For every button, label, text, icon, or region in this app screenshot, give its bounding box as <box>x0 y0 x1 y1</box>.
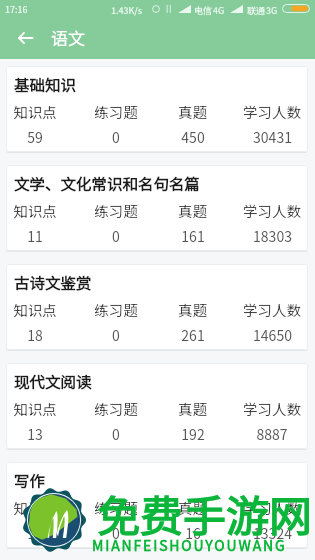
staticText: 文学、文化常识和名句名篇 <box>14 172 201 194</box>
staticText: 免费手游网 <box>97 482 312 544</box>
button[interactable]: 现代文阅读 <box>6 363 308 449</box>
staticText: 0 <box>112 127 120 147</box>
staticText: 8887 <box>256 424 288 444</box>
staticText: 0 <box>112 226 120 246</box>
button[interactable]: 基础知识 <box>6 66 308 152</box>
staticText: 学习人数 <box>243 497 301 518</box>
staticText: 450 <box>181 127 205 147</box>
staticText: 11 <box>27 226 43 246</box>
staticText: 192 <box>181 424 205 444</box>
staticText: 0 <box>112 424 120 444</box>
staticText: 学习人数 <box>243 398 301 419</box>
staticText: 真题 <box>178 200 207 221</box>
staticText: 真题 <box>178 497 207 518</box>
staticText: 14 <box>27 523 43 543</box>
staticText: 练习题 <box>94 200 138 221</box>
staticText: 59 <box>27 127 43 147</box>
staticText: 知识点 <box>13 497 57 518</box>
button[interactable]: 古诗文鉴赏 <box>6 264 308 350</box>
staticText: 写作 <box>14 469 46 491</box>
staticText: 知识点 <box>13 200 57 221</box>
staticText: 0 <box>112 325 120 345</box>
staticText: MIANFEISHOUYOUWANG <box>92 535 287 555</box>
staticText: 13324 <box>253 523 292 543</box>
staticText: 1.43K/s <box>111 4 143 17</box>
staticText: 3G <box>266 4 278 17</box>
staticText: 18 <box>27 325 43 345</box>
button[interactable]: Back <box>8 20 43 55</box>
staticText: 练习题 <box>94 299 138 320</box>
staticText: 知识点 <box>13 398 57 419</box>
staticText: 练习题 <box>94 497 138 518</box>
staticText: 0 <box>112 523 120 543</box>
staticText: 现代文阅读 <box>14 370 92 392</box>
staticText: 真题 <box>178 398 207 419</box>
staticText: 练习题 <box>94 101 138 122</box>
staticText: 261 <box>181 325 205 345</box>
staticText: 30431 <box>253 127 292 147</box>
staticText: 16 <box>185 523 201 543</box>
staticText: 联通 <box>247 4 266 17</box>
staticText: 练习题 <box>94 398 138 419</box>
button[interactable]: 文学、文化常识和名句名篇 <box>6 165 308 251</box>
staticText: 4G <box>213 4 225 17</box>
staticText: 13 <box>27 424 43 444</box>
staticText: 18303 <box>253 226 292 246</box>
staticText: 知识点 <box>13 101 57 122</box>
staticText: 真题 <box>178 299 207 320</box>
staticText: 真题 <box>178 101 207 122</box>
staticText: 14650 <box>253 325 292 345</box>
staticText: 学习人数 <box>243 101 301 122</box>
staticText: 语文 <box>51 25 85 50</box>
staticText: 学习人数 <box>243 200 301 221</box>
staticText: 161 <box>181 226 205 246</box>
staticText: 知识点 <box>13 299 57 320</box>
staticText: 基础知识 <box>14 73 77 95</box>
staticText: 电信 <box>194 4 213 17</box>
staticText: 古诗文鉴赏 <box>14 271 92 293</box>
staticText: 学习人数 <box>243 299 301 320</box>
staticText: 17:16 <box>5 3 28 16</box>
button[interactable]: 写作 <box>6 462 308 548</box>
